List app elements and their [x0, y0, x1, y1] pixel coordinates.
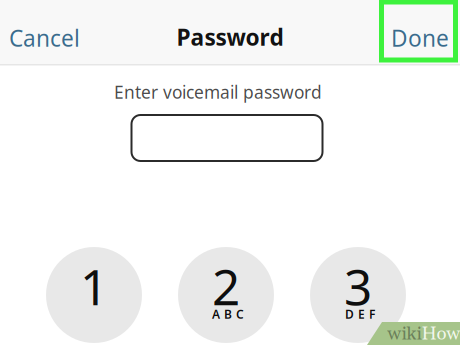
- staticText: 2: [212, 253, 240, 319]
- button[interactable]: 2: [178, 247, 274, 343]
- staticText: Cancel: [9, 23, 80, 53]
- staticText: ABC: [212, 306, 244, 322]
- button[interactable]: Cancel: [0, 0, 89, 64]
- staticText: How: [421, 322, 460, 345]
- button[interactable]: Done: [380, 0, 460, 64]
- staticText: wiki: [387, 322, 421, 345]
- button[interactable]: 1: [46, 247, 142, 343]
- button[interactable]: 3: [310, 247, 406, 343]
- staticText: Done: [391, 23, 449, 53]
- staticText: DEF: [345, 306, 375, 322]
- staticText: 3: [344, 253, 372, 319]
- staticText: Enter voicemail password: [114, 80, 322, 103]
- staticText: Password: [176, 22, 283, 52]
- staticText: 1: [80, 253, 108, 319]
